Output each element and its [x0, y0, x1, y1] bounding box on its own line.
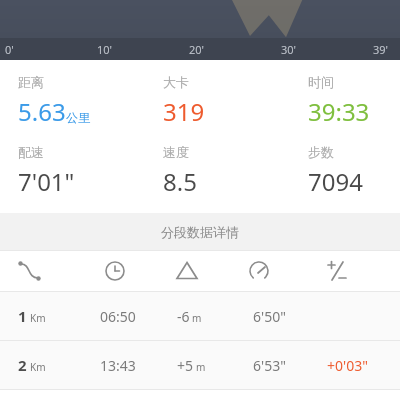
button[interactable]: 2 [0, 341, 400, 389]
staticText: 6'50" [253, 307, 286, 326]
staticText: 8.5 [163, 165, 197, 198]
staticText: 39:33 [308, 95, 370, 128]
staticText: 20' [189, 42, 205, 57]
staticText: 5.63 [18, 95, 66, 128]
staticText: 公里 [66, 110, 90, 125]
staticText: 6'53" [253, 356, 286, 375]
staticText: Km [30, 311, 46, 325]
staticText: 大卡 [163, 74, 189, 90]
staticText: 0' [5, 42, 14, 57]
staticText: +0'03" [327, 356, 368, 375]
button[interactable]: 1 [0, 292, 400, 340]
staticText: 7'01" [18, 165, 75, 198]
button[interactable]: 分段数据详情 [0, 213, 400, 250]
staticText: Km [30, 360, 46, 374]
staticText: 1 [18, 306, 27, 326]
staticText: 时间 [308, 74, 334, 90]
staticText: 10' [97, 42, 113, 57]
staticText: 7094 [308, 165, 363, 198]
staticText: 06:50 [100, 307, 136, 326]
staticText: 距离 [18, 74, 44, 90]
staticText: 2 [18, 355, 27, 375]
staticText: 39' [373, 42, 389, 57]
staticText: 30' [281, 42, 297, 57]
staticText: 步数 [308, 144, 334, 160]
staticText: m [196, 360, 206, 374]
staticText: m [192, 311, 202, 325]
staticText: +5 [177, 356, 194, 375]
staticText: 速度 [163, 144, 189, 160]
staticText: 319 [163, 95, 205, 128]
staticText: 配速 [18, 144, 44, 160]
staticText: -6 [177, 307, 190, 326]
staticText: 分段数据详情 [161, 224, 239, 240]
staticText: 13:43 [100, 356, 136, 375]
